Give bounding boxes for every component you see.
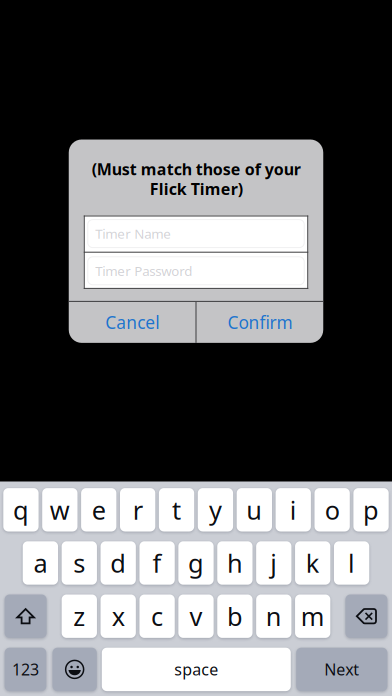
button[interactable]: space: [102, 648, 291, 691]
staticText: h: [227, 546, 243, 580]
button[interactable]: b: [217, 594, 252, 638]
button[interactable]: Next: [296, 648, 387, 691]
button[interactable]: r: [120, 488, 155, 531]
button[interactable]: Shift: [5, 594, 47, 638]
button[interactable]: v: [178, 594, 214, 638]
staticText: w: [50, 493, 70, 527]
button[interactable]: h: [217, 541, 252, 585]
staticText: e: [92, 493, 106, 527]
staticText: u: [246, 493, 262, 527]
staticText: f: [153, 546, 162, 580]
button[interactable]: a: [23, 541, 58, 585]
button[interactable]: g: [178, 541, 214, 585]
button[interactable]: j: [256, 541, 291, 585]
staticText: Next: [324, 659, 359, 680]
staticText: p: [363, 493, 379, 527]
button[interactable]: n: [256, 594, 291, 638]
button[interactable]: x: [100, 594, 136, 638]
staticText: q: [13, 493, 29, 527]
button[interactable]: m: [295, 594, 330, 638]
staticText: j: [270, 546, 277, 580]
button[interactable]: Delete: [345, 594, 387, 638]
button[interactable]: c: [139, 594, 175, 638]
staticText: 123: [12, 659, 39, 680]
button[interactable]: Emoji: [52, 648, 97, 691]
staticText: x: [112, 599, 125, 633]
staticText: n: [266, 599, 282, 633]
button[interactable]: t: [159, 488, 194, 531]
button[interactable]: u: [237, 488, 272, 531]
staticText: b: [227, 599, 243, 633]
button[interactable]: y: [198, 488, 233, 531]
button[interactable]: o: [314, 488, 350, 531]
button[interactable]: z: [62, 594, 97, 638]
staticText: s: [73, 546, 85, 580]
button[interactable]: f: [139, 541, 175, 585]
button[interactable]: i: [276, 488, 311, 531]
staticText: Timer Name: [95, 225, 171, 242]
staticText: Timer Password: [95, 262, 192, 280]
button[interactable]: d: [100, 541, 136, 585]
button[interactable]: w: [42, 488, 77, 531]
staticText: l: [348, 546, 355, 580]
button[interactable]: q: [3, 488, 39, 531]
button[interactable]: 123: [5, 648, 46, 691]
staticText: a: [33, 546, 47, 580]
staticText: z: [73, 599, 85, 633]
staticText: t: [172, 493, 181, 527]
staticText: i: [290, 493, 297, 527]
staticText: Confirm: [227, 311, 292, 334]
button[interactable]: Cancel: [69, 302, 196, 343]
staticText: y: [209, 493, 222, 527]
button[interactable]: p: [353, 488, 389, 531]
staticText: o: [325, 493, 340, 527]
button[interactable]: l: [334, 541, 369, 585]
staticText: c: [151, 599, 163, 633]
staticText: k: [306, 546, 320, 580]
staticText: Cancel: [105, 311, 159, 334]
staticText: m: [301, 599, 325, 633]
staticText: r: [133, 493, 143, 527]
staticText: v: [189, 599, 202, 633]
button[interactable]: s: [62, 541, 97, 585]
staticText: g: [188, 546, 204, 580]
button[interactable]: e: [81, 488, 116, 531]
staticText: space: [174, 659, 218, 680]
staticText: (Must match those of your Flick Timer): [91, 158, 300, 199]
staticText: d: [110, 546, 126, 580]
button[interactable]: k: [295, 541, 330, 585]
button[interactable]: Confirm: [196, 302, 323, 343]
